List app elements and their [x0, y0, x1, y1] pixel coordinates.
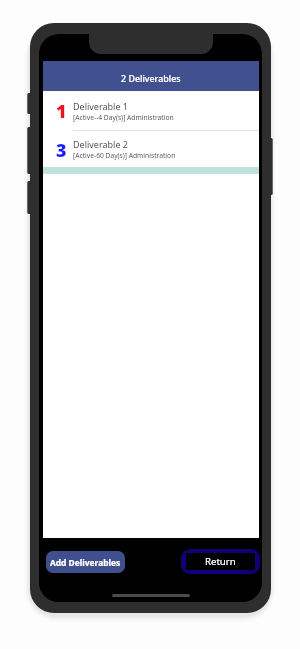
staticText: 3: [56, 138, 67, 163]
staticText: 1: [56, 99, 67, 124]
button[interactable]: 1: [43, 91, 259, 130]
button[interactable]: Add Deliverables: [46, 551, 125, 573]
button[interactable]: 2 Deliverables: [43, 61, 259, 91]
staticText: Add Deliverables: [50, 557, 121, 568]
staticText: Deliverable 1: [73, 100, 128, 112]
staticText: 2 Deliverables: [121, 72, 181, 84]
button[interactable]: Return: [181, 549, 260, 574]
button[interactable]: 3: [43, 131, 259, 167]
staticText: Deliverable 2: [73, 138, 128, 150]
staticText: [Active--4 Day(s)] Administration: [73, 113, 174, 122]
staticText: [Active-60 Day(s)] Administration: [73, 151, 176, 160]
staticText: Return: [205, 555, 236, 568]
